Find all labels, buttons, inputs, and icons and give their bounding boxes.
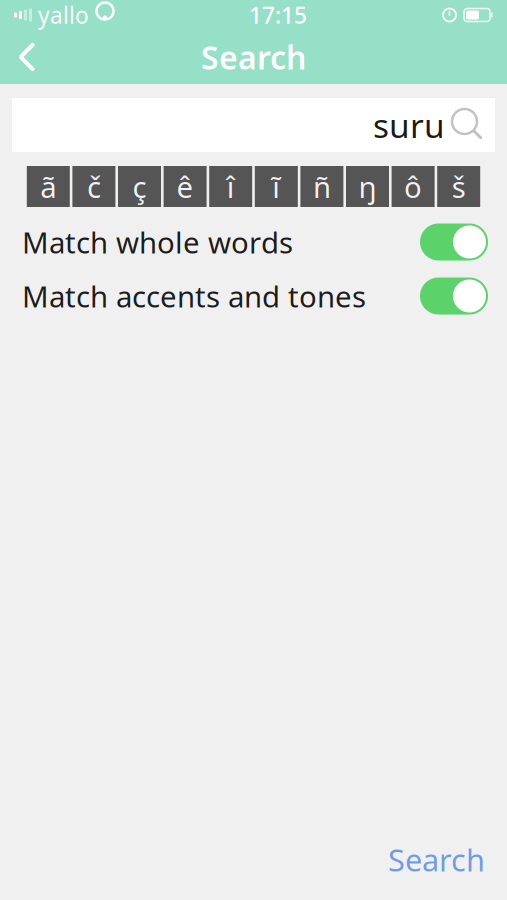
- staticText: ô: [404, 167, 422, 206]
- staticText: Match whole words: [22, 222, 293, 261]
- staticText: 17:15: [249, 0, 307, 30]
- button[interactable]: č: [72, 166, 115, 207]
- staticText: Search: [201, 36, 306, 78]
- staticText: ç: [132, 167, 146, 206]
- staticText: ĩ: [272, 167, 280, 206]
- button[interactable]: ŋ: [346, 166, 389, 207]
- button[interactable]: ñ: [300, 166, 343, 207]
- staticText: Match accents and tones: [22, 276, 366, 315]
- button[interactable]: ç: [118, 166, 161, 207]
- button[interactable]: suru: [12, 98, 495, 152]
- button[interactable]: ê: [164, 166, 207, 207]
- staticText: Search: [388, 839, 485, 880]
- button[interactable]: Match whole words: [0, 223, 507, 261]
- staticText: ê: [177, 167, 194, 206]
- staticText: ñ: [313, 167, 331, 206]
- button[interactable]: š: [437, 166, 480, 207]
- staticText: ã: [40, 167, 56, 206]
- button[interactable]: Back: [0, 30, 54, 84]
- staticText: î: [227, 167, 235, 206]
- button[interactable]: Search: [372, 829, 507, 890]
- button[interactable]: Match accents and tones: [0, 277, 507, 315]
- button[interactable]: ã: [27, 166, 70, 207]
- staticText: suru: [373, 103, 445, 147]
- staticText: č: [87, 167, 101, 206]
- button[interactable]: î: [209, 166, 252, 207]
- button[interactable]: ô: [392, 166, 435, 207]
- staticText: ŋ: [358, 167, 376, 206]
- staticText: yallo: [38, 0, 89, 30]
- staticText: š: [452, 167, 466, 206]
- button[interactable]: ĩ: [255, 166, 298, 207]
